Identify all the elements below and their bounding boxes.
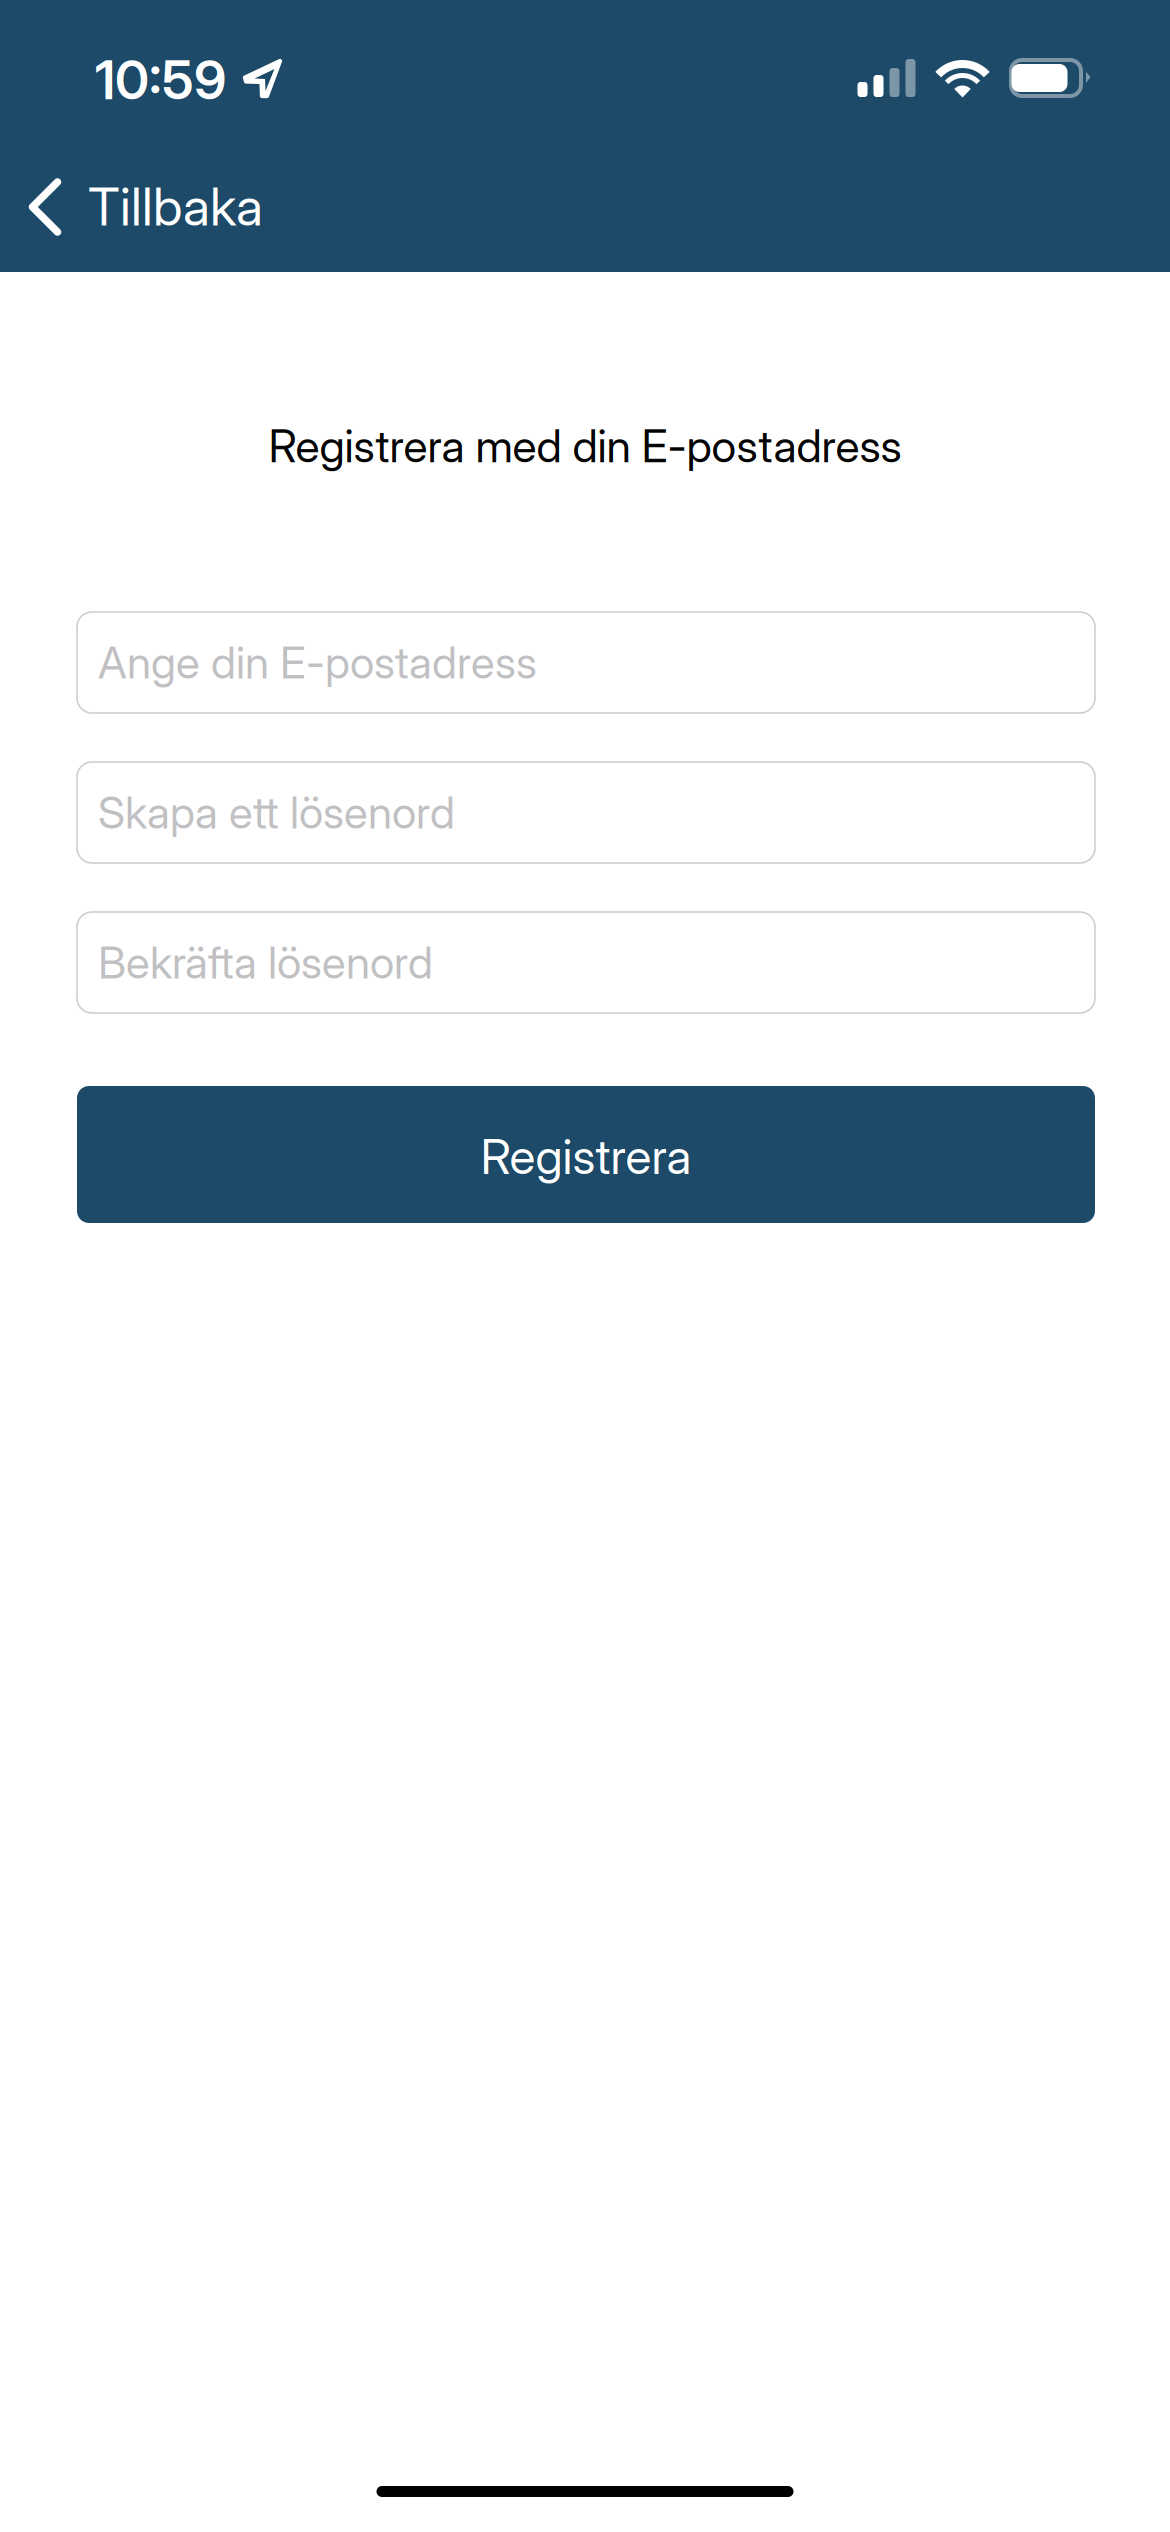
staticText: Ange din E-postadress [98,636,537,689]
button[interactable]: Ange din E-postadress [77,612,1095,713]
button[interactable]: Skapa ett lösenord [77,762,1095,863]
staticText: Skapa ett lösenord [98,786,455,839]
staticText: Bekräfta lösenord [98,936,433,989]
staticText: Registrera [480,1127,691,1186]
button[interactable]: Registrera [0,1086,1170,1223]
button[interactable]: Tillbaka [0,141,293,268]
button[interactable]: Bekräfta lösenord [77,912,1095,1013]
staticText: Tillbaka [88,175,263,238]
staticText: Registrera med din E-postadress [268,419,901,473]
staticText: 10:59 [95,47,226,112]
